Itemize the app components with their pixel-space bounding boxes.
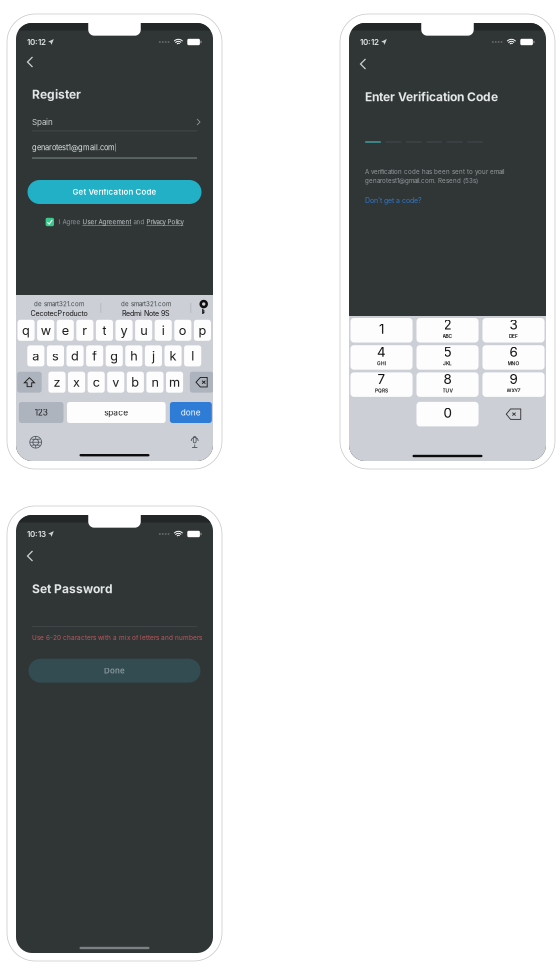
button[interactable]: 3 [482, 318, 544, 342]
button[interactable]: w [37, 320, 54, 341]
button[interactable]: 2 [416, 318, 478, 342]
button[interactable]: Done [28, 659, 200, 683]
staticText: n [151, 374, 158, 390]
button[interactable]: 8 [416, 372, 478, 397]
staticText: JKL [443, 361, 452, 366]
button[interactable]: Dictate [187, 433, 203, 451]
staticText: 7 [377, 371, 385, 387]
staticText: Redmi Note 9S [122, 309, 170, 317]
staticText: g [110, 348, 118, 363]
staticText: o [179, 323, 187, 338]
staticText: TUV [442, 388, 452, 394]
staticText: 2 [443, 317, 451, 333]
button[interactable]: j [145, 345, 162, 366]
button[interactable]: 1 [350, 318, 412, 342]
staticText: v [112, 374, 119, 390]
button[interactable]: q [17, 320, 35, 341]
button[interactable]: 0 [416, 402, 478, 426]
staticText: Spain [32, 117, 53, 127]
button[interactable]: Delete [482, 402, 544, 426]
staticText: User Agreement [82, 218, 131, 226]
staticText: WXYZ [506, 388, 520, 394]
button[interactable]: 9 [482, 372, 544, 397]
button[interactable]: e [57, 320, 74, 341]
staticText: 10:12 [360, 37, 379, 47]
button[interactable]: Back [20, 546, 40, 566]
button[interactable]: 4 [350, 345, 412, 370]
staticText: Privacy Policy [146, 218, 183, 226]
button[interactable]: r [76, 320, 93, 341]
staticText: b [131, 374, 139, 390]
staticText: u [140, 323, 147, 338]
button[interactable]: Shift [17, 372, 42, 393]
staticText: 4 [377, 344, 386, 360]
staticText: k [170, 348, 177, 363]
button[interactable]: de smart321.com [19, 299, 99, 319]
button[interactable]: z [48, 372, 65, 393]
button[interactable]: o [174, 320, 191, 341]
button[interactable]: Change keyboard [27, 433, 45, 451]
staticText: i [162, 323, 165, 338]
staticText: a [32, 348, 39, 363]
button[interactable]: done [170, 402, 212, 423]
staticText: 8 [443, 371, 451, 387]
staticText: 123 [35, 407, 48, 417]
button[interactable]: h [125, 345, 142, 366]
button[interactable]: a [27, 345, 44, 366]
button[interactable]: v [107, 372, 124, 393]
staticText: j [152, 348, 155, 363]
staticText: Get Verification Code [72, 187, 156, 197]
button[interactable]: t [96, 320, 113, 341]
staticText: t [102, 323, 106, 338]
button[interactable]: space [67, 402, 166, 423]
button[interactable]: g [106, 345, 123, 366]
button[interactable]: f [86, 345, 103, 366]
staticText: done [181, 407, 201, 417]
button[interactable]: p [194, 320, 211, 341]
staticText: I Agree [58, 218, 82, 226]
staticText: 5 [443, 344, 451, 360]
staticText: 0 [443, 405, 451, 421]
staticText: e [62, 323, 69, 338]
button[interactable]: 7 [350, 372, 412, 397]
staticText: CecotecProducto [30, 309, 87, 317]
staticText: 9 [509, 371, 517, 387]
button[interactable]: y [115, 320, 133, 341]
button[interactable]: Back [353, 54, 373, 74]
button[interactable]: Delete [190, 372, 213, 393]
button[interactable]: u [135, 320, 152, 341]
staticText: genarotest1@gmail.com. Resend (53s) [365, 177, 478, 184]
button[interactable]: 123 [19, 402, 63, 423]
button[interactable]: 6 [482, 345, 544, 370]
staticText: GHI [377, 361, 386, 366]
button[interactable]: c [88, 372, 105, 393]
staticText: 6 [509, 344, 517, 360]
staticText: de smart321.com [34, 300, 84, 308]
button[interactable]: m [166, 372, 183, 393]
staticText: z [53, 374, 60, 390]
button[interactable]: de smart321.com [106, 299, 186, 319]
button[interactable]: Back [20, 52, 40, 72]
button[interactable]: k [164, 345, 182, 366]
button[interactable]: Passwords [197, 301, 211, 315]
button[interactable]: l [184, 345, 201, 366]
button[interactable]: d [66, 345, 84, 366]
button[interactable]: x [68, 372, 85, 393]
button[interactable]: 5 [416, 345, 478, 370]
staticText: Done [104, 666, 125, 675]
staticText: Register [32, 87, 81, 101]
button[interactable]: s [47, 345, 64, 366]
staticText: q [22, 323, 30, 338]
staticText: Use 6-20 characters with a mix of letter… [32, 634, 202, 641]
staticText: p [198, 323, 206, 338]
staticText: DEF [509, 333, 518, 339]
staticText: Don't get a code? [365, 196, 422, 205]
button[interactable]: Get Verification Code [27, 180, 201, 204]
staticText: y [120, 323, 127, 338]
staticText: h [130, 348, 137, 363]
button[interactable]: n [146, 372, 163, 393]
button[interactable]: Spain [16, 114, 213, 130]
button[interactable]: i [155, 320, 172, 341]
button[interactable]: Don't get a code? [365, 196, 422, 205]
button[interactable]: b [127, 372, 144, 393]
